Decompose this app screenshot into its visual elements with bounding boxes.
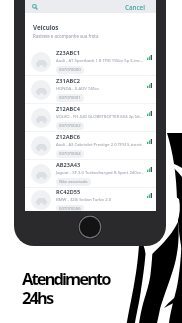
staticText: 007070004 — [59, 151, 81, 157]
staticText: Z31ABC2 — [56, 77, 81, 85]
staticText: Z23ABC1 — [56, 49, 81, 57]
staticText: Atendimento — [22, 267, 110, 289]
button[interactable]: RC42D55 — [25, 188, 156, 211]
staticText: 24hs — [22, 286, 53, 308]
staticText: Z12ABC6 — [56, 133, 81, 141]
staticText: Rastreie e acompanhe sua frota — [33, 33, 99, 39]
staticText: VOLVO - FH-540 GLOBETROTTER 6X4 2p (di..… — [56, 114, 144, 120]
button[interactable]: Z12ABC6 — [25, 132, 156, 159]
button[interactable]: Cancel — [123, 2, 147, 12]
staticText: 007070001 — [59, 95, 81, 101]
staticText: 007070006 — [59, 206, 81, 210]
staticText: Cancel — [125, 3, 145, 11]
staticText: AB23A43 — [56, 161, 81, 169]
button[interactable]: Z31ABC2 — [25, 76, 156, 103]
staticText: RC42D55 — [56, 188, 81, 196]
other: Signal strength — [146, 110, 152, 116]
other: Signal strength — [146, 82, 152, 88]
other: Signal strength — [146, 166, 152, 172]
staticText: Não associado — [59, 179, 88, 185]
button[interactable]: Search — [31, 3, 39, 11]
staticText: 007070000 — [59, 67, 81, 73]
staticText: Veículos — [33, 23, 59, 31]
button[interactable]: Z12ABC4 — [25, 104, 156, 131]
staticText: Audi - A3 Cabriolet Prestige 2.0 TFSI S-… — [56, 142, 143, 148]
staticText: BMW - 320i Sedan Turbo 2.0 — [56, 197, 112, 203]
staticText: Audi - A1 Sportback 1.8 TFSI 192cv 5p S-… — [56, 58, 144, 64]
staticText: Jaguar - XF 3.0 Turbocharged R-Sport 240… — [56, 170, 144, 176]
other: Signal strength — [146, 54, 152, 60]
staticText: 007070002 — [59, 123, 81, 129]
button[interactable]: Z23ABC1 — [25, 48, 156, 75]
button[interactable]: AB23A43 — [25, 160, 156, 187]
staticText: Z12ABC4 — [56, 105, 81, 113]
staticText: HONDA - X-ADV 745cc — [56, 86, 100, 92]
other: Signal strength — [146, 138, 152, 144]
other: Signal strength — [146, 192, 152, 198]
